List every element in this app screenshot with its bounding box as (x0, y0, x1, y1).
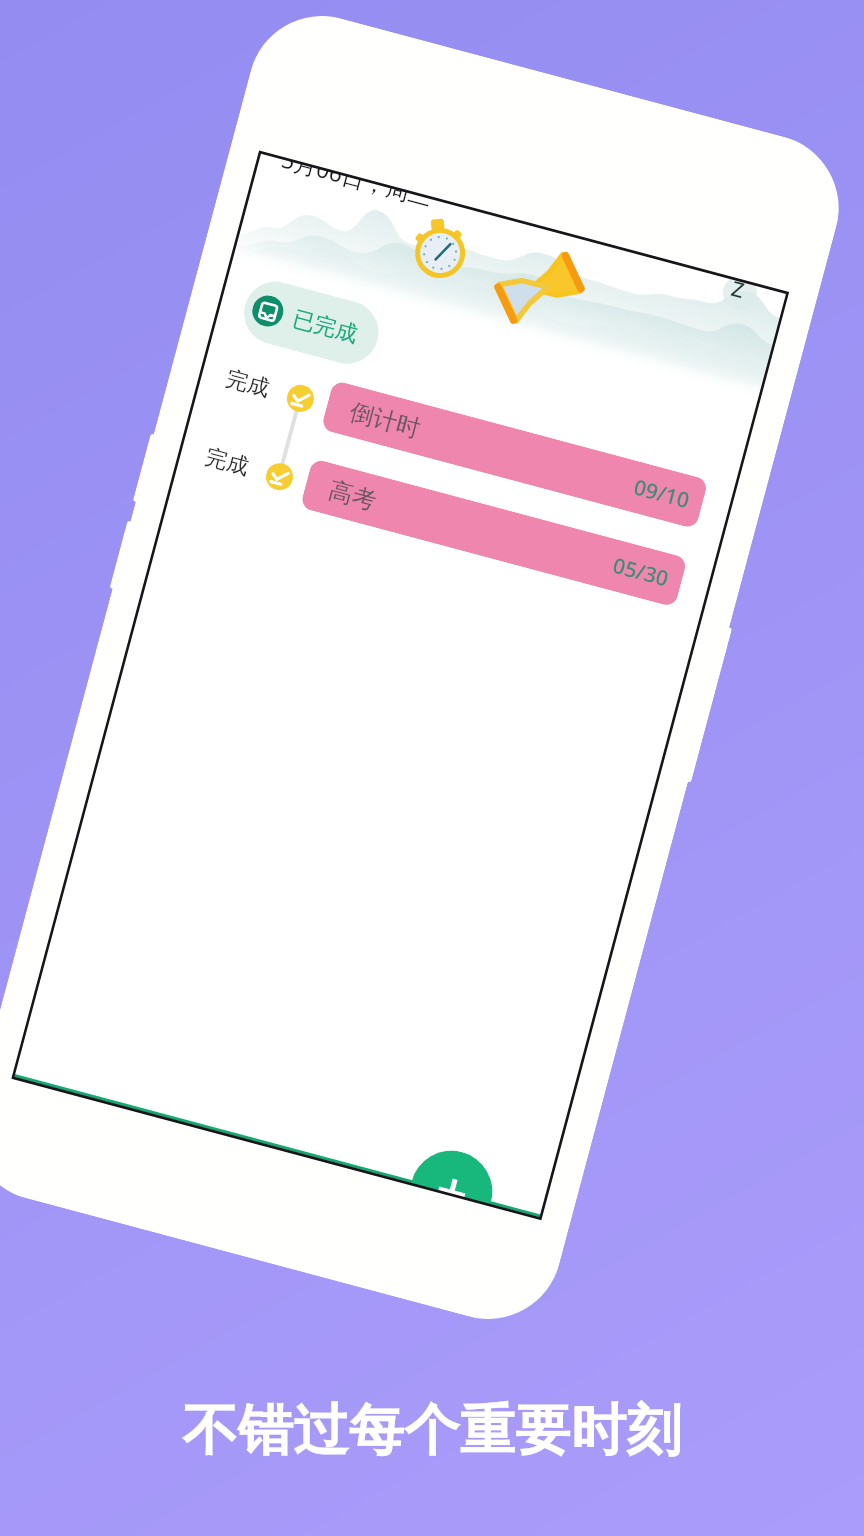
staticText: 倒计时 (346, 397, 424, 444)
button[interactable]: 倒计时 (321, 380, 709, 529)
button[interactable]: Completed (263, 460, 296, 493)
button[interactable]: 已完成 (237, 274, 386, 371)
button[interactable]: 高考 (300, 458, 688, 608)
button[interactable]: Add countdown (411, 1141, 502, 1205)
staticText: 不错过每个重要时刻 (0, 1396, 864, 1465)
staticText: 05/30 (610, 551, 672, 593)
staticText: 09/10 (631, 473, 693, 515)
staticText: 完成 (223, 365, 273, 403)
button[interactable]: Completed (284, 382, 317, 415)
staticText: Z (728, 279, 747, 305)
staticText: 5月06日，周二 (278, 158, 432, 213)
staticText: 完成 (202, 443, 252, 481)
staticText: 已完成 (290, 305, 361, 349)
staticText: 高考 (325, 475, 380, 516)
